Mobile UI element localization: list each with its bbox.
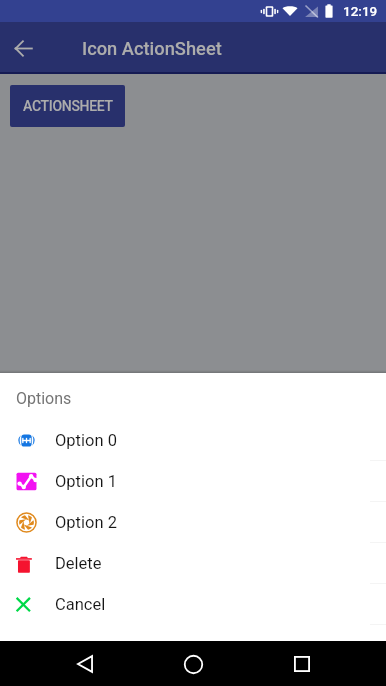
button[interactable]: Back: [65, 644, 105, 684]
button[interactable]: Cancel: [0, 584, 386, 625]
button[interactable]: Back: [3, 28, 43, 68]
staticText: ACTIONSHEET: [23, 98, 113, 114]
staticText: Cancel: [55, 595, 106, 614]
staticText: Delete: [55, 554, 102, 573]
staticText: 12:19: [343, 3, 378, 19]
staticText: Option 2: [55, 513, 117, 532]
button[interactable]: Option 2: [0, 502, 386, 543]
staticText: Option 1: [55, 472, 117, 491]
staticText: Options: [16, 389, 72, 408]
staticText: Option 0: [55, 431, 117, 450]
button[interactable]: Recents: [282, 644, 322, 684]
button[interactable]: Home: [173, 644, 213, 684]
button[interactable]: Option 1: [0, 461, 386, 502]
staticText: Icon ActionSheet: [82, 38, 222, 59]
button[interactable]: Delete: [0, 543, 386, 584]
button[interactable]: ACTIONSHEET: [10, 85, 125, 127]
button[interactable]: Option 0: [0, 420, 386, 461]
